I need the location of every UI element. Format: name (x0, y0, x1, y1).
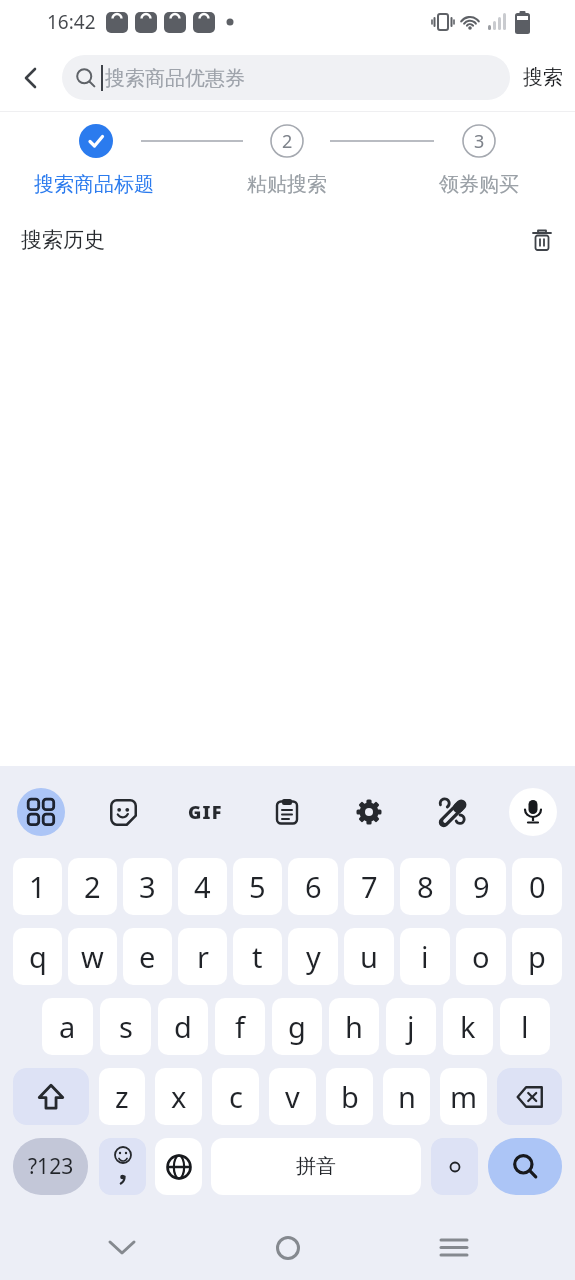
staticText: 9 (473, 867, 490, 906)
button[interactable]: j (386, 998, 436, 1055)
button[interactable] (431, 1138, 478, 1195)
button[interactable] (345, 788, 393, 836)
button[interactable]: z (99, 1068, 145, 1125)
staticText: 6 (305, 867, 322, 906)
button[interactable] (99, 788, 147, 836)
button[interactable]: h (329, 998, 379, 1055)
button[interactable] (427, 788, 475, 836)
button[interactable] (155, 1138, 202, 1195)
staticText: u (360, 937, 378, 976)
button[interactable]: a (42, 998, 93, 1055)
button[interactable]: ?123 (13, 1138, 88, 1195)
button[interactable] (0, 44, 62, 111)
staticText: 0 (529, 867, 546, 906)
button[interactable]: m (440, 1068, 487, 1125)
staticText: 拼音 (296, 1154, 336, 1179)
button[interactable]: p (512, 928, 562, 985)
staticText: x (171, 1077, 187, 1116)
button[interactable] (434, 1228, 474, 1268)
button[interactable]: 8 (400, 858, 450, 915)
staticText: 粘贴搜索 (247, 172, 327, 197)
button[interactable]: 搜索商品优惠券 (62, 55, 510, 100)
button[interactable]: b (326, 1068, 373, 1125)
button[interactable] (17, 788, 65, 836)
staticText: 8 (417, 867, 434, 906)
staticText: a (59, 1007, 76, 1046)
button[interactable] (102, 1228, 142, 1268)
button[interactable]: i (400, 928, 450, 985)
staticText: 领券购买 (439, 172, 519, 197)
staticText: g (288, 1007, 306, 1046)
button[interactable]: 3 (123, 858, 172, 915)
staticText: 2 (84, 867, 101, 906)
button[interactable] (509, 788, 557, 836)
button[interactable]: v (269, 1068, 316, 1125)
staticText: o (472, 937, 490, 976)
staticText: i (421, 937, 429, 976)
staticText: q (29, 937, 47, 976)
button[interactable]: t (233, 928, 282, 985)
button[interactable]: 9 (456, 858, 506, 915)
staticText: n (398, 1077, 416, 1116)
staticText: 搜索 (523, 65, 563, 90)
staticText: 16:42 (47, 9, 96, 35)
staticText: h (345, 1007, 363, 1046)
staticText: s (119, 1007, 133, 1046)
button[interactable]: 搜索 (510, 44, 575, 111)
staticText: e (139, 937, 156, 976)
staticText: ?123 (28, 1152, 74, 1181)
staticText: 2 (282, 129, 293, 154)
button[interactable]: s (100, 998, 151, 1055)
staticText: 7 (361, 867, 378, 906)
button[interactable]: 1 (13, 858, 62, 915)
button[interactable]: q (13, 928, 62, 985)
button[interactable]: d (158, 998, 208, 1055)
staticText: 搜索商品标题 (34, 172, 154, 197)
staticText: d (174, 1007, 192, 1046)
button[interactable]: y (288, 928, 338, 985)
staticText: 3 (139, 867, 156, 906)
staticText: GIF (188, 800, 223, 825)
button[interactable]: 6 (288, 858, 338, 915)
button[interactable]: w (68, 928, 117, 985)
button[interactable] (268, 1228, 308, 1268)
button[interactable]: u (344, 928, 394, 985)
button[interactable] (488, 1138, 562, 1195)
button[interactable]: 拼音 (211, 1138, 421, 1195)
staticText: j (407, 1007, 415, 1046)
staticText: v (285, 1077, 300, 1116)
button[interactable]: c (212, 1068, 259, 1125)
button[interactable]: n (383, 1068, 430, 1125)
staticText: m (450, 1077, 478, 1116)
staticText: r (197, 937, 209, 976)
button[interactable]: 4 (178, 858, 227, 915)
button[interactable]: e (123, 928, 172, 985)
staticText: k (460, 1007, 476, 1046)
button[interactable]: o (456, 928, 506, 985)
staticText: t (252, 937, 263, 976)
button[interactable]: g (272, 998, 322, 1055)
button[interactable]: 7 (344, 858, 394, 915)
button[interactable]: x (155, 1068, 202, 1125)
staticText: 搜索商品优惠券 (105, 66, 245, 91)
button[interactable]: k (443, 998, 493, 1055)
button[interactable] (497, 1068, 562, 1125)
staticText: w (81, 937, 104, 976)
button[interactable]: GIF (181, 788, 229, 836)
button[interactable]: r (178, 928, 227, 985)
button[interactable]: 0 (512, 858, 562, 915)
button[interactable]: f (215, 998, 265, 1055)
staticText: y (306, 937, 321, 976)
button[interactable] (532, 229, 552, 251)
button[interactable] (13, 1068, 89, 1125)
staticText: l (521, 1007, 529, 1046)
button[interactable]: 5 (233, 858, 282, 915)
staticText: f (235, 1007, 245, 1046)
button[interactable] (99, 1138, 146, 1195)
button[interactable]: l (500, 998, 550, 1055)
staticText: z (115, 1077, 129, 1116)
button[interactable]: 2 (68, 858, 117, 915)
staticText: 5 (249, 867, 266, 906)
button[interactable] (263, 788, 311, 836)
staticText: 搜索历史 (21, 227, 105, 253)
